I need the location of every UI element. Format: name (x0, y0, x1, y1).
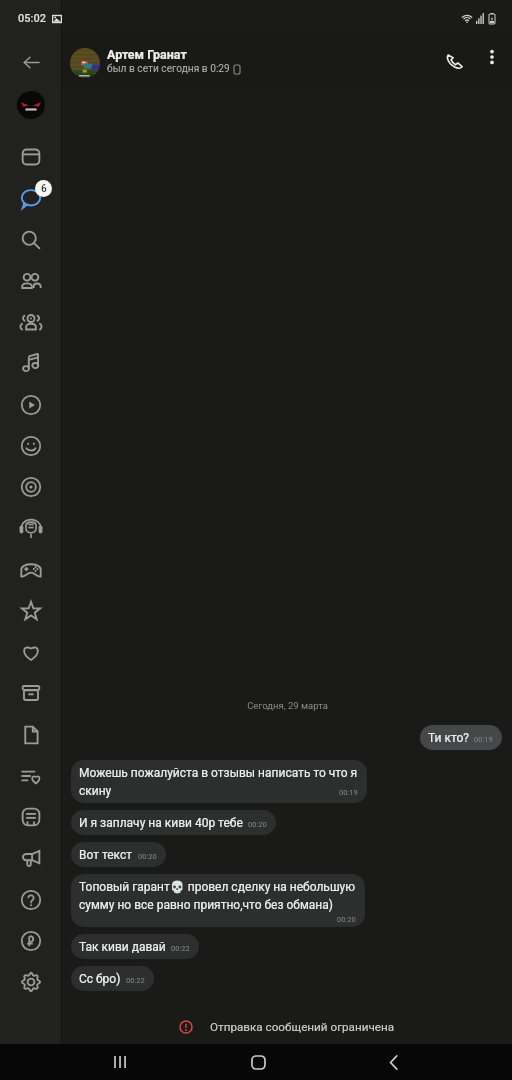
button[interactable]: Back (0, 45, 62, 79)
staticText: Вот текст (79, 848, 133, 862)
button[interactable]: Back (369, 1044, 419, 1080)
staticText: скину (79, 784, 112, 798)
staticText: 00:20 (337, 915, 356, 924)
button[interactable]: Archive (0, 673, 62, 713)
button[interactable]: Favorites (0, 591, 62, 631)
staticText: был в сети сегодня в 0:29 (107, 63, 230, 75)
staticText: сумму но все равно приятно,что без обман… (79, 898, 333, 912)
staticText: И я заплачу на киви 40р тебе (79, 816, 243, 830)
button[interactable]: Clips (0, 467, 62, 507)
button[interactable]: Games (0, 550, 62, 590)
button[interactable]: Files (0, 715, 62, 755)
button[interactable]: News (0, 137, 62, 177)
button[interactable]: Home (233, 1044, 283, 1080)
staticText: Можешь пожалуйста в отзывы написать то ч… (79, 766, 358, 780)
staticText: 00:22 (126, 976, 145, 985)
button[interactable]: Video (0, 385, 62, 425)
button[interactable]: Можешь пожалуйста в отзывы написать то ч… (71, 760, 367, 803)
staticText: 05:02 (18, 12, 46, 25)
button[interactable]: И я заплачу на киви 40р тебе (71, 810, 276, 835)
button[interactable]: Music (0, 343, 62, 383)
button[interactable]: Messages (0, 178, 62, 218)
staticText: Ти кто? (428, 731, 469, 745)
button[interactable]: Notes (0, 797, 62, 837)
staticText: Отправка сообщений ограничена (210, 1020, 395, 1034)
button[interactable]: Lists (0, 756, 62, 796)
button[interactable]: Ти кто? (420, 725, 502, 750)
button[interactable]: Money (0, 921, 62, 961)
staticText: 00:19 (339, 788, 358, 797)
button[interactable]: Profile (0, 88, 62, 122)
button[interactable]: Settings (0, 962, 62, 1002)
button[interactable]: More options (475, 40, 509, 74)
staticText: Сегодня, 29 марта (247, 700, 328, 711)
button[interactable]: Топовый гарант💀 провел сделку на небольш… (71, 874, 365, 927)
button[interactable]: Groups (0, 302, 62, 342)
staticText: Сс бро) (79, 972, 121, 986)
button[interactable]: Podcasts (0, 508, 62, 548)
staticText: 00:20 (248, 820, 267, 829)
staticText: 6 (41, 183, 47, 195)
button[interactable]: Help (0, 880, 62, 920)
staticText: Топовый гарант💀 провел сделку на небольш… (79, 880, 356, 894)
button[interactable]: Friends (0, 261, 62, 301)
button[interactable]: Recents (96, 1044, 146, 1080)
staticText: Так киви давай (79, 940, 166, 954)
staticText: Артем Гранат (107, 47, 187, 62)
button[interactable]: Сс бро) (71, 966, 154, 991)
button[interactable]: Search (0, 220, 62, 260)
button[interactable]: Call (434, 40, 474, 80)
staticText: 00:22 (171, 944, 190, 953)
staticText: 00:19 (474, 735, 493, 744)
staticText: 00:20 (138, 852, 157, 861)
button[interactable]: Likes (0, 632, 62, 672)
button[interactable]: Stickers (0, 426, 62, 466)
button[interactable]: Так киви давай (71, 934, 199, 959)
button[interactable]: Вот текст (71, 842, 166, 867)
button[interactable]: Ads (0, 838, 62, 878)
